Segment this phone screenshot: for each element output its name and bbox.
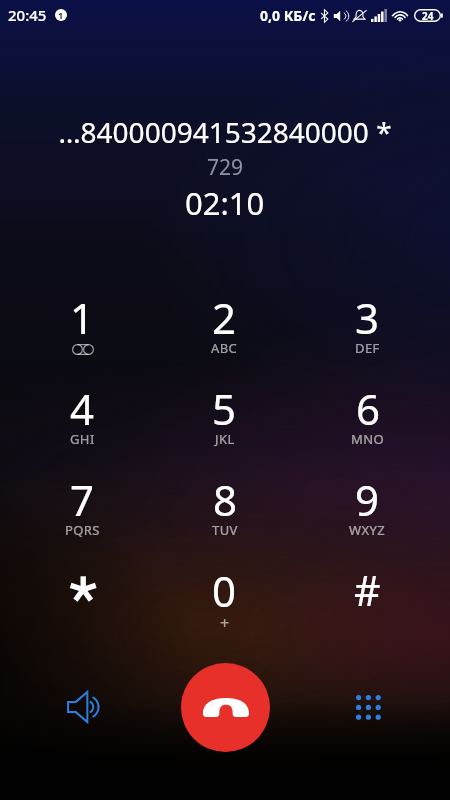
button[interactable]: Keypad [346,685,390,729]
staticText: 0 [212,562,237,619]
button[interactable]: 1 [11,289,153,380]
staticText: 4 [70,380,95,437]
button[interactable]: 8 [153,471,296,562]
staticText: 3 [355,289,380,346]
staticText: 729 [207,153,244,182]
staticText: 1 [58,9,64,21]
button[interactable]: 4 [11,380,153,471]
button[interactable]: 9 [296,471,439,562]
button[interactable]: 0 [153,562,296,653]
button[interactable]: 7 [11,471,153,562]
staticText: GHI [70,430,95,448]
button[interactable]: # [296,562,439,653]
button[interactable]: 5 [153,380,296,471]
staticText: 1 [70,289,95,346]
staticText: PQRS [65,521,100,539]
staticText: 24 [422,9,434,22]
staticText: 02:10 [185,182,265,224]
button[interactable]: 3 [296,289,439,380]
button[interactable]: Speaker [58,682,108,732]
button[interactable]: 2 [153,289,296,380]
staticText: WXYZ [349,521,386,539]
staticText: 2 [212,289,237,346]
staticText: ABC [211,339,238,357]
staticText: 8 [213,471,238,528]
staticText: 7 [70,471,95,528]
staticText: MNO [351,430,385,448]
staticText: 0,0 КБ/c [260,6,316,25]
staticText: # [354,562,381,618]
button[interactable]: End call [181,663,270,752]
staticText: + [220,612,230,634]
staticText: DEF [355,339,380,357]
staticText: 9 [355,471,380,528]
staticText: 6 [356,380,381,437]
staticText: 20:45 [8,5,47,25]
staticText: TUV [212,521,238,539]
staticText: JKL [215,430,235,448]
button[interactable]: 6 [296,380,439,471]
button[interactable] [11,562,153,653]
staticText: 5 [212,380,237,437]
staticText: …840000941532840000 * [58,113,392,151]
